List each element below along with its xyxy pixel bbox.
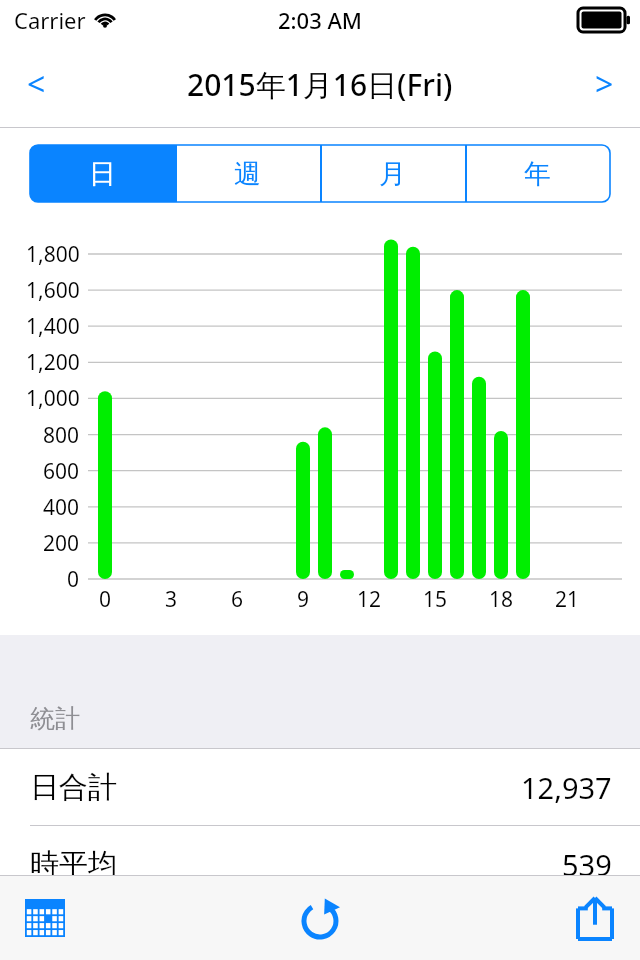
- staticText: 2015年1月16日(Fri): [187, 64, 453, 105]
- staticText: 18: [489, 585, 514, 614]
- staticText: 1,800: [26, 240, 80, 268]
- staticText: 3: [165, 585, 178, 614]
- button[interactable]: Calendar: [0, 876, 90, 960]
- staticText: 年: [524, 157, 551, 191]
- staticText: 539: [562, 845, 612, 884]
- staticText: 6: [231, 585, 244, 614]
- staticText: 統計: [30, 703, 80, 734]
- staticText: <: [27, 62, 46, 106]
- staticText: 時平均: [30, 846, 117, 883]
- staticText: 月: [379, 157, 406, 191]
- staticText: 週: [234, 157, 261, 191]
- staticText: 1,200: [26, 348, 80, 376]
- button[interactable]: 月: [320, 145, 465, 202]
- button[interactable]: 時平均: [0, 826, 640, 902]
- staticText: 12: [357, 585, 382, 614]
- staticText: 600: [43, 457, 80, 485]
- staticText: 12,937: [521, 768, 612, 807]
- staticText: 1,400: [26, 312, 80, 340]
- staticText: 日: [89, 157, 116, 191]
- staticText: 15: [423, 585, 448, 614]
- staticText: 日合計: [30, 769, 117, 806]
- staticText: 2:03 AM: [278, 5, 363, 35]
- button[interactable]: Share: [550, 876, 640, 960]
- staticText: 800: [43, 421, 80, 449]
- staticText: Carrier: [14, 5, 86, 35]
- staticText: 9: [297, 585, 310, 614]
- staticText: 400: [43, 493, 80, 521]
- staticText: 0: [99, 585, 112, 614]
- button[interactable]: Next day: [568, 40, 640, 128]
- staticText: 1,000: [26, 384, 80, 412]
- staticText: 1,600: [26, 276, 80, 304]
- button[interactable]: Previous day: [0, 40, 72, 128]
- button[interactable]: 日: [30, 145, 175, 202]
- button[interactable]: Refresh: [275, 876, 365, 960]
- button[interactable]: 年: [465, 145, 610, 202]
- button[interactable]: 週: [175, 145, 320, 202]
- staticText: 0: [67, 565, 80, 593]
- button[interactable]: 日合計: [0, 749, 640, 825]
- staticText: 21: [555, 585, 580, 614]
- staticText: >: [595, 62, 614, 106]
- staticText: 200: [43, 529, 80, 557]
